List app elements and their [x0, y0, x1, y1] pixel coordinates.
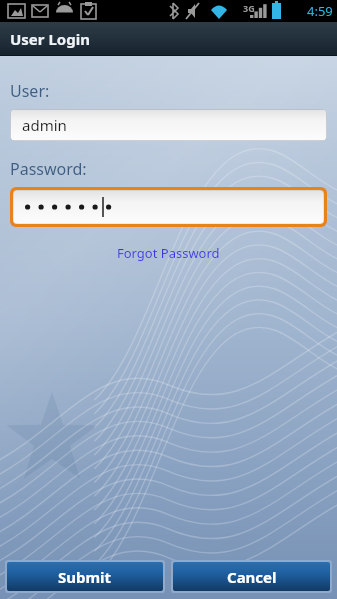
- staticText: Submit: [58, 567, 112, 587]
- staticText: User:: [10, 80, 50, 102]
- staticText: Cancel: [227, 567, 277, 587]
- staticText: User Login: [10, 29, 90, 49]
- button[interactable]: Cancel: [171, 560, 332, 593]
- staticText: 4:59: [307, 2, 333, 20]
- staticText: admin: [22, 115, 67, 135]
- button[interactable]: [10, 187, 327, 227]
- button[interactable]: Forgot Password: [113, 242, 224, 264]
- staticText: Password:: [10, 158, 87, 180]
- button[interactable]: Submit: [5, 560, 165, 593]
- button[interactable]: admin: [10, 109, 327, 141]
- staticText: 3G: [243, 2, 255, 14]
